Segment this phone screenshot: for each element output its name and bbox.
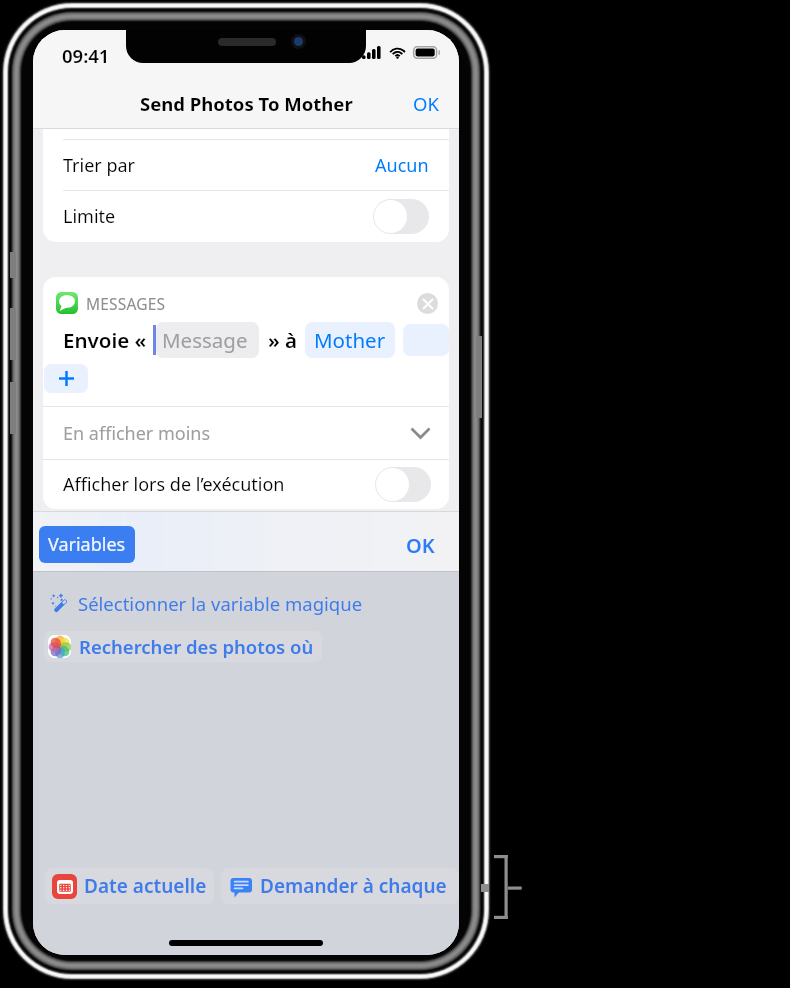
- button[interactable]: Variables: [39, 526, 135, 563]
- staticText: OK: [413, 91, 439, 116]
- staticText: Date actuelle: [84, 873, 207, 899]
- staticText: Envoie «: [63, 326, 147, 354]
- staticText: » à: [268, 326, 298, 354]
- button[interactable]: Rechercher des photos où: [44, 631, 322, 662]
- button[interactable]: Sélectionner la variable magique: [47, 588, 365, 619]
- staticText: Variables: [48, 532, 126, 557]
- staticText: MESSAGES: [86, 293, 166, 314]
- staticText: Send Photos To Mother: [140, 91, 353, 116]
- staticText: En afficher moins: [63, 421, 211, 446]
- button[interactable]: Date actuelle: [45, 868, 214, 904]
- staticText: Afficher lors de l’exécution: [63, 472, 285, 497]
- button[interactable]: Toggle: [375, 467, 431, 502]
- button[interactable]: En afficher moins: [43, 407, 449, 459]
- button[interactable]: Add parameter: [44, 364, 88, 393]
- button[interactable]: Trier par: [43, 140, 449, 190]
- staticText: 09:41: [62, 43, 110, 68]
- staticText: Demander à chaque fois: [260, 873, 452, 899]
- button[interactable]: Afficher lors de l’exécution: [43, 460, 449, 509]
- staticText: Mother: [314, 326, 386, 354]
- button[interactable]: Mother: [305, 322, 395, 358]
- staticText: Limite: [63, 204, 116, 229]
- button[interactable]: OK: [382, 516, 459, 574]
- button[interactable]: Toggle: [373, 199, 429, 234]
- staticText: Sélectionner la variable magique: [78, 591, 363, 616]
- staticText: Message: [162, 326, 248, 354]
- button[interactable]: Remove action: [417, 293, 438, 314]
- staticText: Aucun: [375, 153, 429, 178]
- other: Callout bracket: [478, 850, 526, 924]
- staticText: Trier par: [63, 153, 136, 178]
- button[interactable]: Limite: [43, 191, 449, 242]
- button[interactable]: Demander à chaque fois: [221, 868, 459, 904]
- button[interactable]: OK: [393, 78, 459, 129]
- staticText: OK: [406, 532, 435, 559]
- staticText: Rechercher des photos où: [79, 634, 314, 659]
